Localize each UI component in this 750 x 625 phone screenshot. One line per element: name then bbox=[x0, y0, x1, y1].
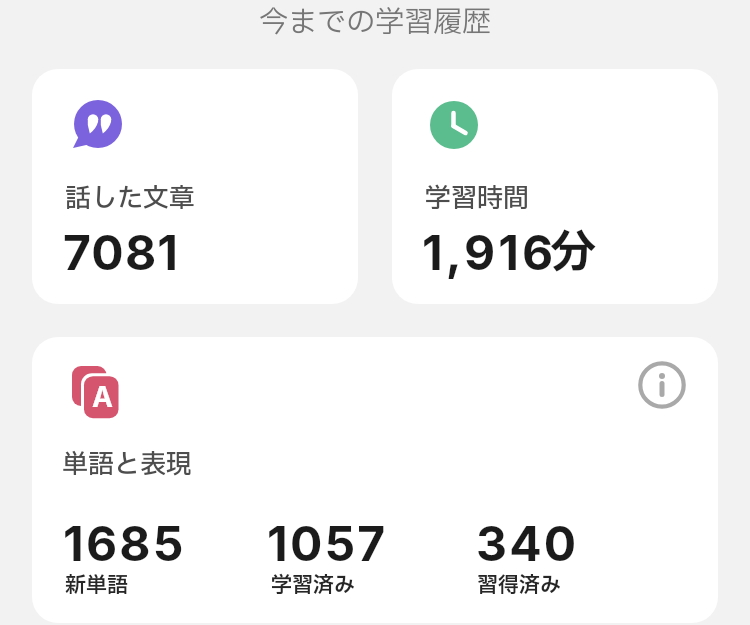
staticText: 1,916 bbox=[422, 223, 557, 281]
staticText: 習得済み bbox=[477, 570, 561, 601]
staticText: 1057 bbox=[267, 514, 388, 572]
staticText: 340 bbox=[476, 514, 579, 572]
button[interactable]: A bbox=[32, 337, 718, 623]
staticText: 学習時間 bbox=[425, 179, 530, 218]
staticText: 新単語 bbox=[65, 570, 128, 601]
staticText: 分 bbox=[550, 219, 596, 288]
button[interactable]: 話した文章 bbox=[32, 69, 358, 304]
staticText: 単語と表現 bbox=[62, 445, 193, 484]
button[interactable]: 学習時間 bbox=[392, 69, 718, 304]
staticText: 7081 bbox=[63, 223, 180, 281]
button[interactable] bbox=[638, 361, 686, 409]
staticText: 今までの学習履歴 bbox=[0, 1, 750, 44]
staticText: 話した文章 bbox=[65, 179, 196, 218]
staticText: 1685 bbox=[63, 514, 186, 572]
staticText: A bbox=[92, 380, 113, 414]
staticText: 学習済み bbox=[271, 570, 355, 601]
